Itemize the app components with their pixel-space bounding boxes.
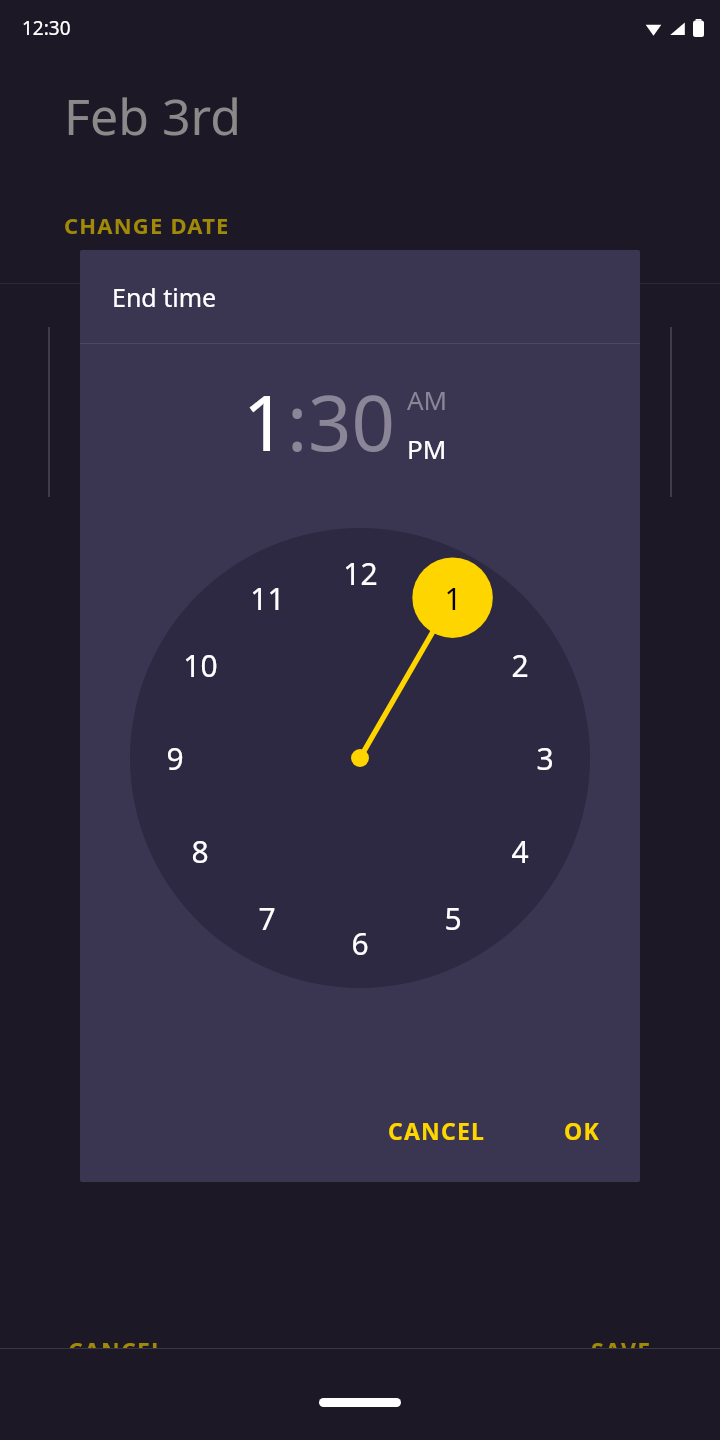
staticText: 9 bbox=[166, 738, 184, 779]
staticText: 6 bbox=[351, 923, 369, 964]
staticText: AM bbox=[407, 382, 448, 417]
staticText: 12 bbox=[343, 553, 378, 594]
staticText: 30 bbox=[308, 370, 395, 474]
staticText: 4 bbox=[511, 831, 529, 872]
staticText: 7 bbox=[258, 898, 276, 939]
staticText: PM bbox=[407, 431, 447, 466]
button[interactable]: 30 bbox=[308, 370, 395, 474]
staticText: OK bbox=[564, 1115, 600, 1146]
staticText: 5 bbox=[444, 898, 462, 939]
staticText: 1 bbox=[444, 578, 462, 619]
button[interactable]: 1 bbox=[243, 370, 287, 474]
button[interactable]: CANCEL bbox=[374, 1103, 500, 1158]
staticText: Feb 3rd bbox=[64, 82, 241, 150]
staticText: SAVE bbox=[591, 1335, 652, 1366]
staticText: 2 bbox=[511, 645, 529, 686]
staticText: End time bbox=[112, 280, 217, 314]
staticText: 12:30 bbox=[22, 15, 71, 41]
button[interactable]: OK bbox=[550, 1103, 614, 1158]
staticText: 3 bbox=[536, 738, 554, 779]
staticText: 1 bbox=[243, 370, 287, 474]
staticText: CANCEL bbox=[388, 1115, 486, 1146]
button[interactable]: CHANGE DATE bbox=[64, 210, 230, 240]
button[interactable]: AM bbox=[407, 382, 448, 417]
staticText: 11 bbox=[250, 578, 285, 619]
staticText: CANCEL bbox=[68, 1335, 166, 1366]
staticText: : bbox=[287, 370, 308, 474]
button[interactable]: Home gesture handle bbox=[319, 1398, 401, 1407]
button[interactable]: SAVE bbox=[579, 1323, 664, 1378]
button[interactable]: PM bbox=[407, 431, 447, 466]
staticText: 8 bbox=[191, 831, 209, 872]
button[interactable]: CANCEL bbox=[56, 1323, 178, 1378]
staticText: 10 bbox=[183, 645, 218, 686]
button[interactable]: Clock face, select hour bbox=[130, 528, 590, 988]
staticText: CHANGE DATE bbox=[64, 210, 230, 240]
